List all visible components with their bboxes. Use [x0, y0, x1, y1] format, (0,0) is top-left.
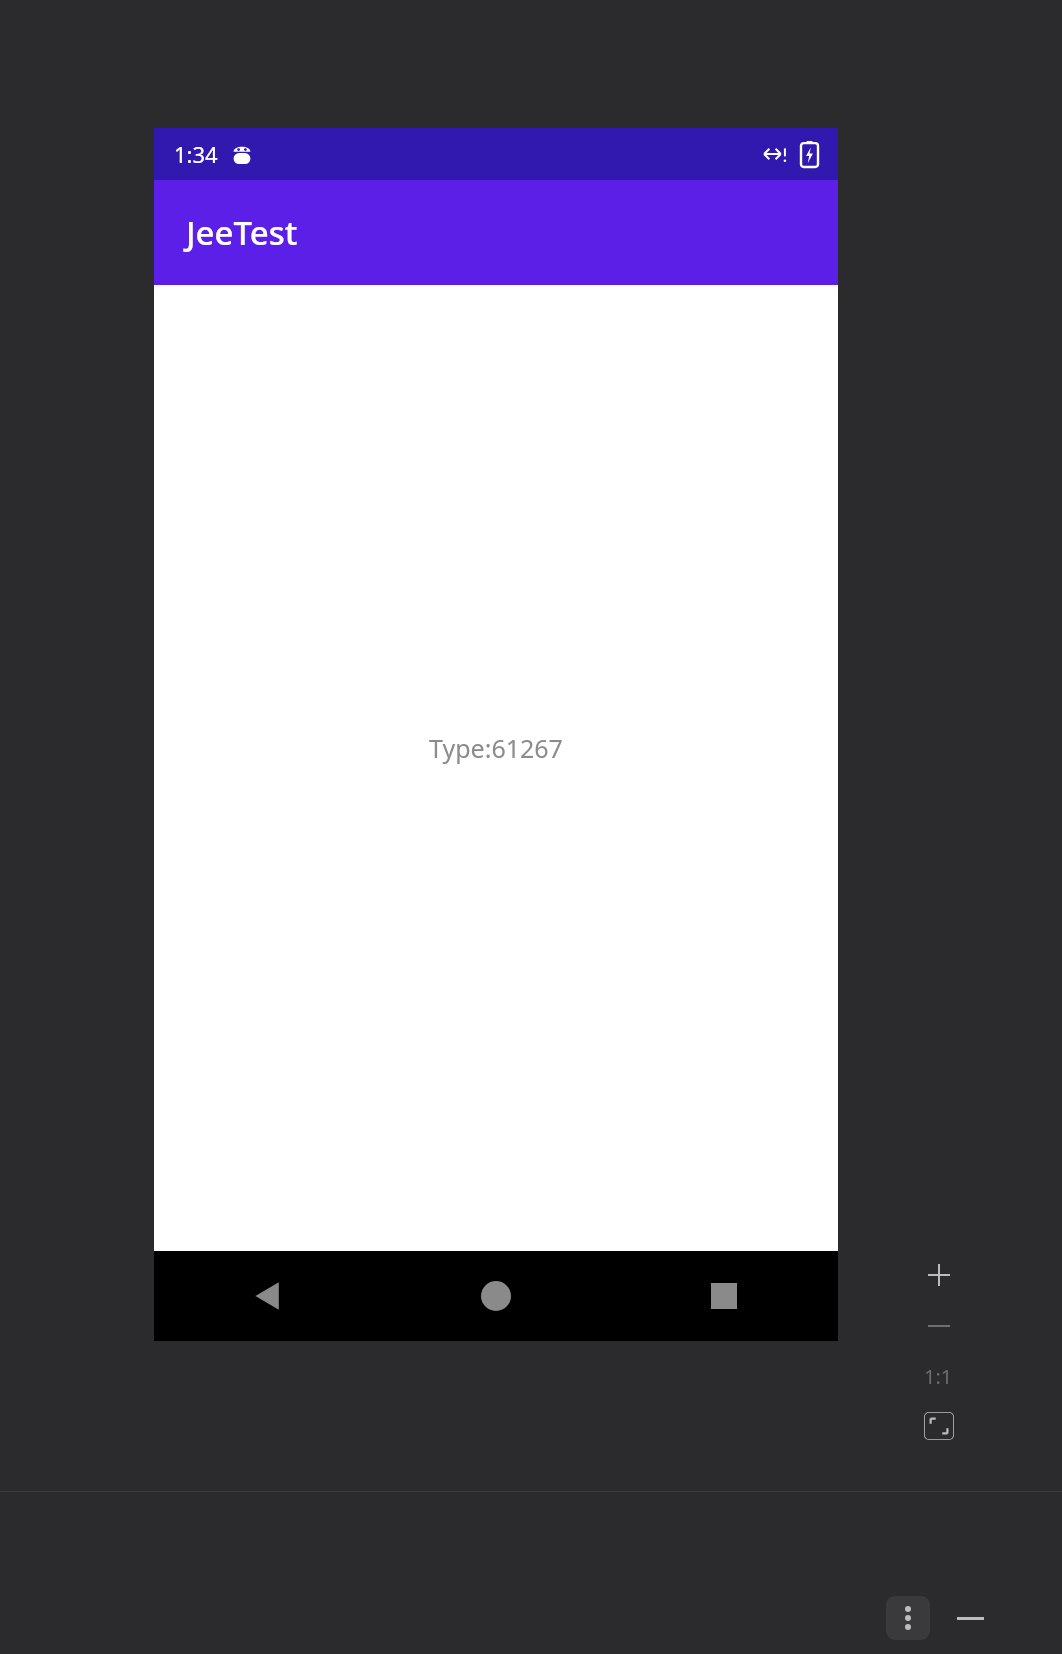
- button[interactable]: Zoom in: [911, 1249, 966, 1301]
- staticText: Type:61267: [429, 731, 563, 765]
- staticText: 1:34: [174, 139, 218, 169]
- button[interactable]: Back: [154, 1251, 382, 1341]
- button[interactable]: 1:1: [911, 1351, 966, 1401]
- button[interactable]: Zoom out: [911, 1301, 966, 1351]
- button[interactable]: More options: [886, 1596, 930, 1640]
- button[interactable]: Home: [382, 1251, 610, 1341]
- button[interactable]: Recent apps: [610, 1251, 838, 1341]
- staticText: 1:1: [924, 1363, 953, 1390]
- button[interactable]: Fit to screen: [911, 1401, 966, 1450]
- staticText: JeeTest: [186, 210, 298, 255]
- button[interactable]: Minimize: [948, 1596, 992, 1640]
